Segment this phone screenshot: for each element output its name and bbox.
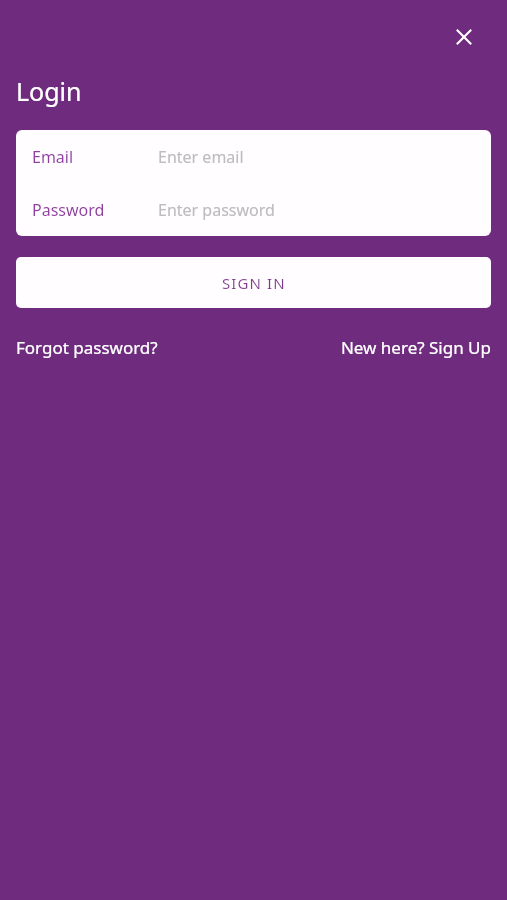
- staticText: Enter password: [158, 199, 275, 221]
- staticText: Forgot password?: [16, 336, 158, 359]
- button[interactable]: Password: [16, 183, 491, 236]
- staticText: Login: [16, 74, 82, 108]
- staticText: Email: [32, 146, 74, 168]
- button[interactable]: SIGN IN: [16, 257, 491, 308]
- button[interactable]: Forgot password?: [16, 336, 158, 359]
- staticText: New here? Sign Up: [340, 336, 491, 359]
- button[interactable]: Close: [447, 20, 481, 54]
- staticText: Enter email: [158, 146, 244, 168]
- staticText: Password: [32, 199, 105, 221]
- button[interactable]: New here? Sign Up: [340, 336, 491, 359]
- staticText: SIGN IN: [222, 273, 286, 293]
- button[interactable]: Email: [16, 130, 491, 183]
